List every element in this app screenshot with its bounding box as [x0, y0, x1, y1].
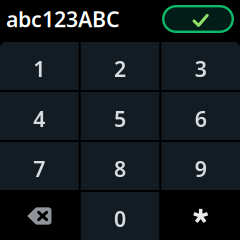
button[interactable]: 6: [161, 92, 240, 140]
button[interactable]: Delete: [0, 192, 79, 240]
button[interactable]: 4: [0, 92, 79, 140]
button[interactable]: 0: [81, 192, 159, 240]
button[interactable]: 3: [161, 42, 240, 90]
staticText: 6: [195, 105, 207, 133]
button[interactable]: 2: [81, 42, 159, 90]
button[interactable]: 1: [0, 42, 79, 90]
staticText: 5: [114, 105, 126, 133]
staticText: 3: [195, 55, 207, 83]
staticText: 7: [33, 155, 45, 183]
button[interactable]: 8: [81, 142, 159, 190]
staticText: abc123ABC: [6, 5, 120, 33]
staticText: 2: [114, 55, 126, 83]
staticText: 9: [195, 155, 207, 183]
button[interactable]: 9: [161, 142, 240, 190]
staticText: 1: [33, 55, 45, 83]
staticText: 4: [33, 105, 45, 133]
button[interactable]: Star: [161, 192, 240, 240]
button[interactable]: 7: [0, 142, 79, 190]
staticText: 0: [114, 205, 126, 233]
button[interactable]: 5: [81, 92, 159, 140]
staticText: 8: [114, 155, 126, 183]
button[interactable]: Confirm: [163, 6, 233, 32]
